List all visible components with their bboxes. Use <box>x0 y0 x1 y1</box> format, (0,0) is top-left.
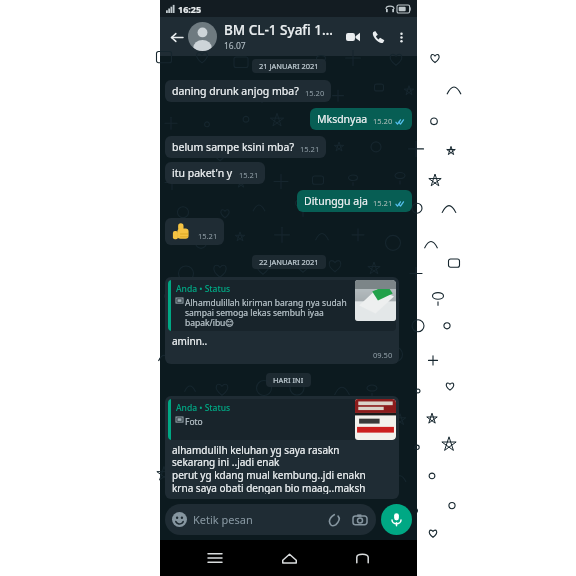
button[interactable]: Ditunggu aja <box>297 190 412 212</box>
staticText: 15.21 <box>198 231 218 241</box>
button[interactable]: More options <box>391 27 411 47</box>
staticText: 16:25 <box>178 3 202 15</box>
staticText: Ketik pesan <box>193 512 253 527</box>
button[interactable]: Home <box>271 540 307 576</box>
staticText: Ditunggu aja <box>304 194 368 208</box>
staticText: belum sampe ksini mba? <box>172 140 294 154</box>
staticText: 16.07 <box>224 40 246 52</box>
button[interactable]: daning drunk anjog mba? <box>165 80 331 102</box>
staticText: Foto <box>185 416 203 428</box>
button[interactable]: Profile photo <box>188 22 217 51</box>
staticText: 15.20 <box>373 116 393 126</box>
button[interactable]: Attach <box>326 511 344 529</box>
button[interactable]: belum sampe ksini mba? <box>165 136 326 158</box>
staticText: Mksdnyaa <box>317 112 368 126</box>
button[interactable]: Voice call <box>367 26 389 48</box>
staticText: Alhamdulillah kiriman barang nya sudah s… <box>185 297 352 328</box>
staticText: 15.21 <box>300 144 320 154</box>
staticText: 21 JANUARI 2021 <box>259 61 319 71</box>
button[interactable]: Back <box>344 540 380 576</box>
staticText: 15.20 <box>305 88 325 98</box>
staticText: Anda • Status <box>176 283 231 295</box>
staticText: 09.50 <box>373 350 393 360</box>
staticText: HARI INI <box>273 375 304 385</box>
staticText: Anda • Status <box>176 402 231 414</box>
button[interactable]: Anda • Status <box>165 277 399 364</box>
button[interactable]: Anda • Status <box>165 396 399 499</box>
staticText: BM CL-1 Syafi 17… <box>224 21 338 39</box>
button[interactable]: Camera <box>351 511 369 529</box>
button[interactable]: Back <box>165 26 187 48</box>
button[interactable]: BM CL-1 Syafi 17… <box>224 21 338 52</box>
staticText: 22 JANUARI 2021 <box>259 257 319 267</box>
button[interactable]: Voice message <box>381 504 412 535</box>
button[interactable]: Ketik pesan <box>165 504 376 535</box>
staticText: daning drunk anjog mba? <box>172 84 299 98</box>
staticText: itu paket'n y <box>172 166 233 180</box>
button[interactable]: Video call <box>342 26 364 48</box>
staticText: 15.21 <box>373 198 393 208</box>
staticText: alhamdulilh keluhan yg saya rasakn sekar… <box>172 443 366 494</box>
button[interactable]: Recents <box>197 540 233 576</box>
staticText: aminn.. <box>172 334 208 348</box>
button[interactable]: Mksdnyaa <box>310 108 412 130</box>
button[interactable]: itu paket'n y <box>165 162 265 184</box>
button[interactable]: 15.21 <box>165 218 224 245</box>
staticText: 15.21 <box>239 170 259 180</box>
